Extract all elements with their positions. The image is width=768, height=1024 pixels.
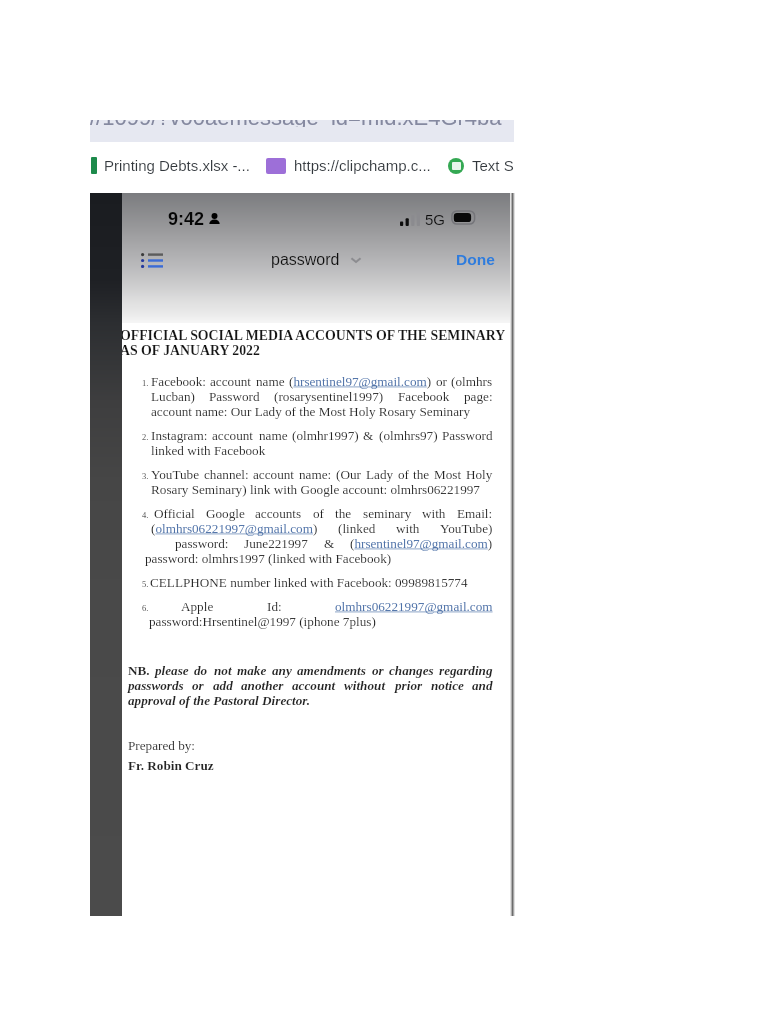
staticText: account name: Our Lady of the Most Holy …	[151, 404, 470, 419]
staticText: Facebook	[398, 389, 450, 404]
staticText: with	[422, 506, 446, 521]
staticText: name	[256, 374, 285, 389]
staticText: Facebook:	[151, 374, 206, 389]
staticText: prior	[395, 678, 423, 693]
staticText: password: olmhrs1997 (linked with Facebo…	[145, 551, 392, 566]
staticText: 6.	[142, 603, 149, 612]
staticText: page:	[464, 389, 493, 404]
staticText: accounts	[255, 506, 302, 521]
staticText: password:Hrsentinel@1997 (iphone 7plus)	[149, 614, 376, 629]
staticText: changes	[389, 663, 434, 678]
staticText: approval of the Pastoral Director.	[128, 693, 311, 708]
staticText: or	[192, 678, 204, 693]
staticText: Holy	[466, 467, 493, 482]
button[interactable]: https://clipchamp.c...	[266, 157, 431, 174]
staticText: account	[292, 678, 336, 693]
staticText: or	[436, 374, 447, 389]
staticText: YouTube)	[440, 521, 493, 536]
staticText: do	[194, 663, 208, 678]
staticText: another	[241, 678, 284, 693]
staticText: or	[372, 663, 384, 678]
button[interactable]: Outline	[141, 249, 167, 271]
staticText: 9:42	[168, 209, 205, 229]
staticText: NB.	[128, 663, 150, 678]
staticText: not	[214, 663, 232, 678]
staticText: Lady	[366, 467, 394, 482]
staticText: amendments	[297, 663, 366, 678]
staticText: (rosarysentinel1997)	[274, 389, 384, 404]
staticText: 3.	[142, 471, 149, 480]
staticText: notice	[431, 678, 464, 693]
staticText: 2.	[142, 432, 149, 441]
staticText: Lucban)	[151, 389, 195, 404]
staticText: &	[324, 536, 335, 551]
staticText: Done	[456, 251, 495, 268]
staticText: password:	[175, 536, 229, 551]
staticText: passwords	[128, 678, 184, 693]
staticText: Official	[154, 506, 195, 521]
staticText: (hrsentinel97@gmail.com)	[350, 536, 493, 551]
staticText: with	[396, 521, 420, 536]
staticText: Most	[434, 467, 462, 482]
staticText: (olmhrs97)	[379, 428, 438, 443]
staticText: and	[472, 678, 493, 693]
staticText: (olmhrs06221997@gmail.com)	[151, 521, 318, 536]
staticText: Password	[209, 389, 260, 404]
staticText: Instagram:	[151, 428, 208, 443]
staticText: Printing Debts.xlsx -...	[104, 157, 250, 174]
staticText: &	[363, 428, 374, 443]
staticText: (hrsentinel97@gmail.com)	[289, 374, 432, 389]
staticText: CELLPHONE number linked with Facebook: 0…	[150, 575, 468, 590]
staticText: linked with Facebook	[151, 443, 266, 458]
staticText: Id:	[267, 599, 282, 614]
staticText: make	[237, 663, 267, 678]
staticText: Apple	[181, 599, 214, 614]
staticText: please	[155, 663, 189, 678]
staticText: password	[271, 251, 340, 269]
staticText: add	[213, 678, 233, 693]
staticText: channel:	[204, 467, 249, 482]
staticText: June221997	[244, 536, 308, 551]
staticText: YouTube	[151, 467, 200, 482]
staticText: Email:	[457, 506, 493, 521]
staticText: name	[259, 428, 288, 443]
staticText: 5.	[142, 579, 149, 588]
staticText: (linked	[338, 521, 376, 536]
staticText: seminary	[363, 506, 412, 521]
staticText: account	[210, 374, 252, 389]
staticText: the	[413, 467, 430, 482]
staticText: Rosary Seminary) link with Google accoun…	[151, 482, 480, 497]
staticText: Prepared by:	[128, 738, 196, 753]
staticText: regarding	[439, 663, 493, 678]
staticText: of	[398, 467, 409, 482]
button[interactable]: password	[271, 251, 362, 269]
button[interactable]: Printing Debts.xlsx -...	[91, 157, 250, 174]
staticText: Fr. Robin Cruz	[128, 758, 214, 773]
button[interactable]: Done	[456, 251, 495, 268]
staticText: any	[272, 663, 292, 678]
staticText: account	[253, 467, 295, 482]
staticText: (olmhr1997)	[292, 428, 359, 443]
staticText: //1099/?v00aemessage_id=mid.xE4Gr4ba_UU1…	[90, 120, 514, 127]
staticText: (olmhrs	[451, 374, 493, 389]
staticText: 5G	[425, 211, 446, 228]
staticText: of	[313, 506, 324, 521]
staticText: name:	[299, 467, 332, 482]
staticText: Password	[442, 428, 493, 443]
staticText: 1.	[142, 378, 149, 387]
staticText: 4.	[142, 510, 149, 519]
staticText: olmhrs06221997@gmail.com	[335, 599, 493, 614]
staticText: (Our	[336, 467, 361, 482]
staticText: Text S	[472, 157, 514, 174]
staticText: the	[335, 506, 352, 521]
staticText: OFFICIAL SOCIAL MEDIA ACCOUNTS OF THE SE…	[120, 328, 506, 358]
button[interactable]: Text S	[448, 157, 514, 174]
staticText: account	[212, 428, 254, 443]
staticText: without	[344, 678, 386, 693]
staticText: Google	[206, 506, 245, 521]
staticText: https://clipchamp.c...	[294, 157, 431, 174]
